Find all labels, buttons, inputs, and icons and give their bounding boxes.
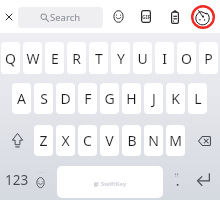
staticText: B [127, 131, 137, 150]
button[interactable]: E [45, 42, 64, 74]
button[interactable]: S [34, 83, 53, 114]
staticText: Search [50, 11, 81, 24]
button[interactable]: 123 [2, 167, 31, 199]
staticText: Y [117, 49, 125, 68]
button[interactable]: Close [0, 0, 17, 33]
staticText: Z [39, 131, 48, 150]
staticText: GIF [142, 13, 151, 20]
staticText: T [95, 49, 103, 68]
staticText: P [204, 49, 213, 68]
staticText: L [194, 89, 202, 108]
button[interactable]: B [122, 125, 141, 156]
staticText: H [126, 89, 137, 108]
staticText: A [17, 89, 26, 108]
button[interactable]: W [23, 42, 42, 74]
button[interactable]: T [89, 42, 108, 74]
button[interactable]: N [144, 125, 163, 156]
button[interactable]: F [78, 83, 97, 114]
button[interactable]: Stickers [191, 0, 215, 33]
button[interactable]: H [122, 83, 141, 114]
staticText: SwiftKey [101, 180, 127, 188]
staticText: O [181, 49, 192, 68]
button[interactable]: Enter [192, 167, 214, 198]
staticText: G [104, 89, 115, 108]
staticText: I [162, 49, 167, 68]
button[interactable]: Punctuation [166, 167, 187, 198]
button[interactable]: J [144, 83, 163, 114]
staticText: J [152, 89, 156, 108]
button[interactable]: C [78, 125, 97, 156]
button[interactable]: G [100, 83, 119, 114]
button[interactable]: A [12, 83, 31, 114]
button[interactable]: L [188, 83, 207, 114]
staticText: V [105, 131, 114, 150]
staticText: X [61, 131, 70, 150]
staticText: S [40, 89, 48, 108]
button[interactable]: Clipboard [164, 0, 185, 33]
button[interactable]: O [177, 42, 196, 74]
button[interactable]: Search [18, 7, 103, 28]
button[interactable]: R [67, 42, 86, 74]
button[interactable]: Emoji [31, 167, 50, 199]
button[interactable]: Q [1, 42, 20, 74]
button[interactable]: Y [111, 42, 130, 74]
button[interactable]: P [199, 42, 218, 74]
button[interactable]: Shift [5, 125, 29, 156]
button[interactable]: K [166, 83, 185, 114]
button[interactable]: Z [34, 125, 53, 156]
staticText: C [83, 131, 92, 150]
staticText: Q [5, 49, 16, 68]
button[interactable]: Emoji [108, 0, 128, 33]
button[interactable]: SwiftKey [57, 166, 163, 198]
button[interactable]: I [155, 42, 174, 74]
staticText: R [72, 49, 81, 68]
staticText: W [26, 49, 40, 68]
staticText: K [171, 89, 180, 108]
staticText: M [169, 131, 182, 150]
staticText: 123 [5, 171, 29, 189]
button[interactable]: V [100, 125, 119, 156]
staticText: U [137, 49, 148, 68]
button[interactable]: Backspace [193, 125, 216, 156]
staticText: E [51, 49, 59, 68]
staticText: D [60, 89, 71, 108]
button[interactable]: X [56, 125, 75, 156]
staticText: N [148, 131, 159, 150]
button[interactable]: GIF [136, 0, 156, 33]
button[interactable]: M [166, 125, 185, 156]
button[interactable]: U [133, 42, 152, 74]
button[interactable]: D [56, 83, 75, 114]
staticText: F [84, 89, 92, 108]
